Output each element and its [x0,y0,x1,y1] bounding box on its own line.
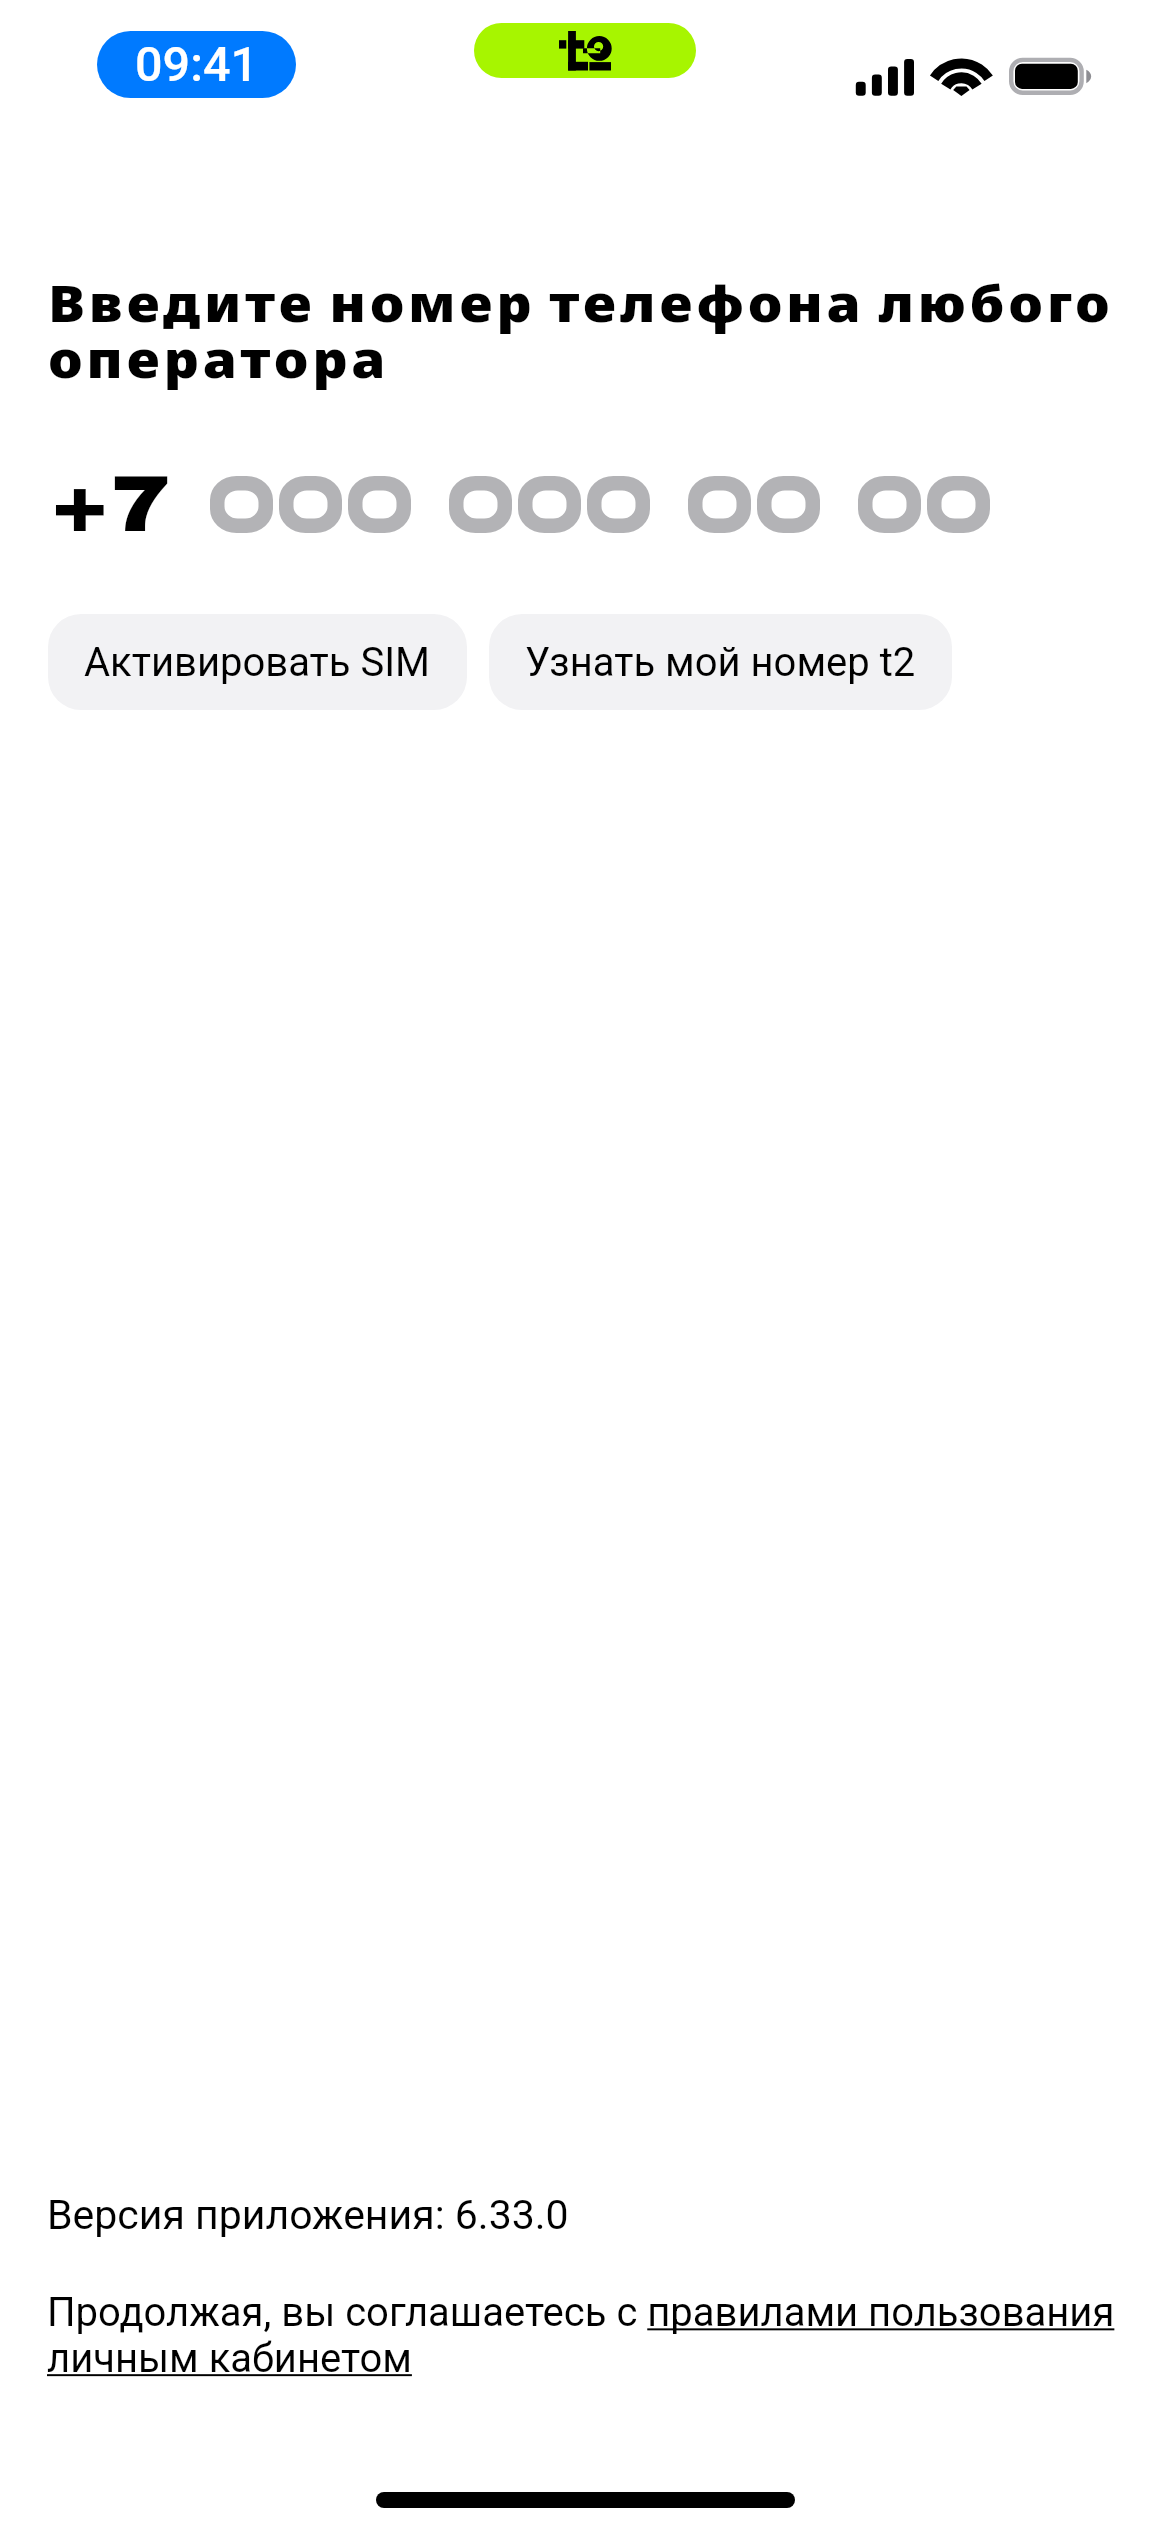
staticText: Введите номер телефона любого оператора [48,269,1120,393]
staticText: Версия приложения: 6.33.0 [47,2191,569,2239]
button[interactable]: Активировать SIM [48,614,467,710]
staticText: 09:41 [135,36,259,93]
button[interactable]: Return to call, 09:41 [97,31,296,98]
button[interactable]: Phone number input [52,470,1002,540]
staticText: Узнать мой номер t2 [525,639,916,686]
staticText: +7 [50,461,173,531]
other: t2 [474,23,696,78]
button[interactable]: Узнать мой номер t2 [489,614,952,710]
button[interactable]: Продолжая, вы соглашаетесь с правилами п… [47,2289,1132,2382]
staticText: Продолжая, вы соглашаетесь с правилами п… [47,2289,1132,2382]
staticText: Активировать SIM [84,639,431,686]
